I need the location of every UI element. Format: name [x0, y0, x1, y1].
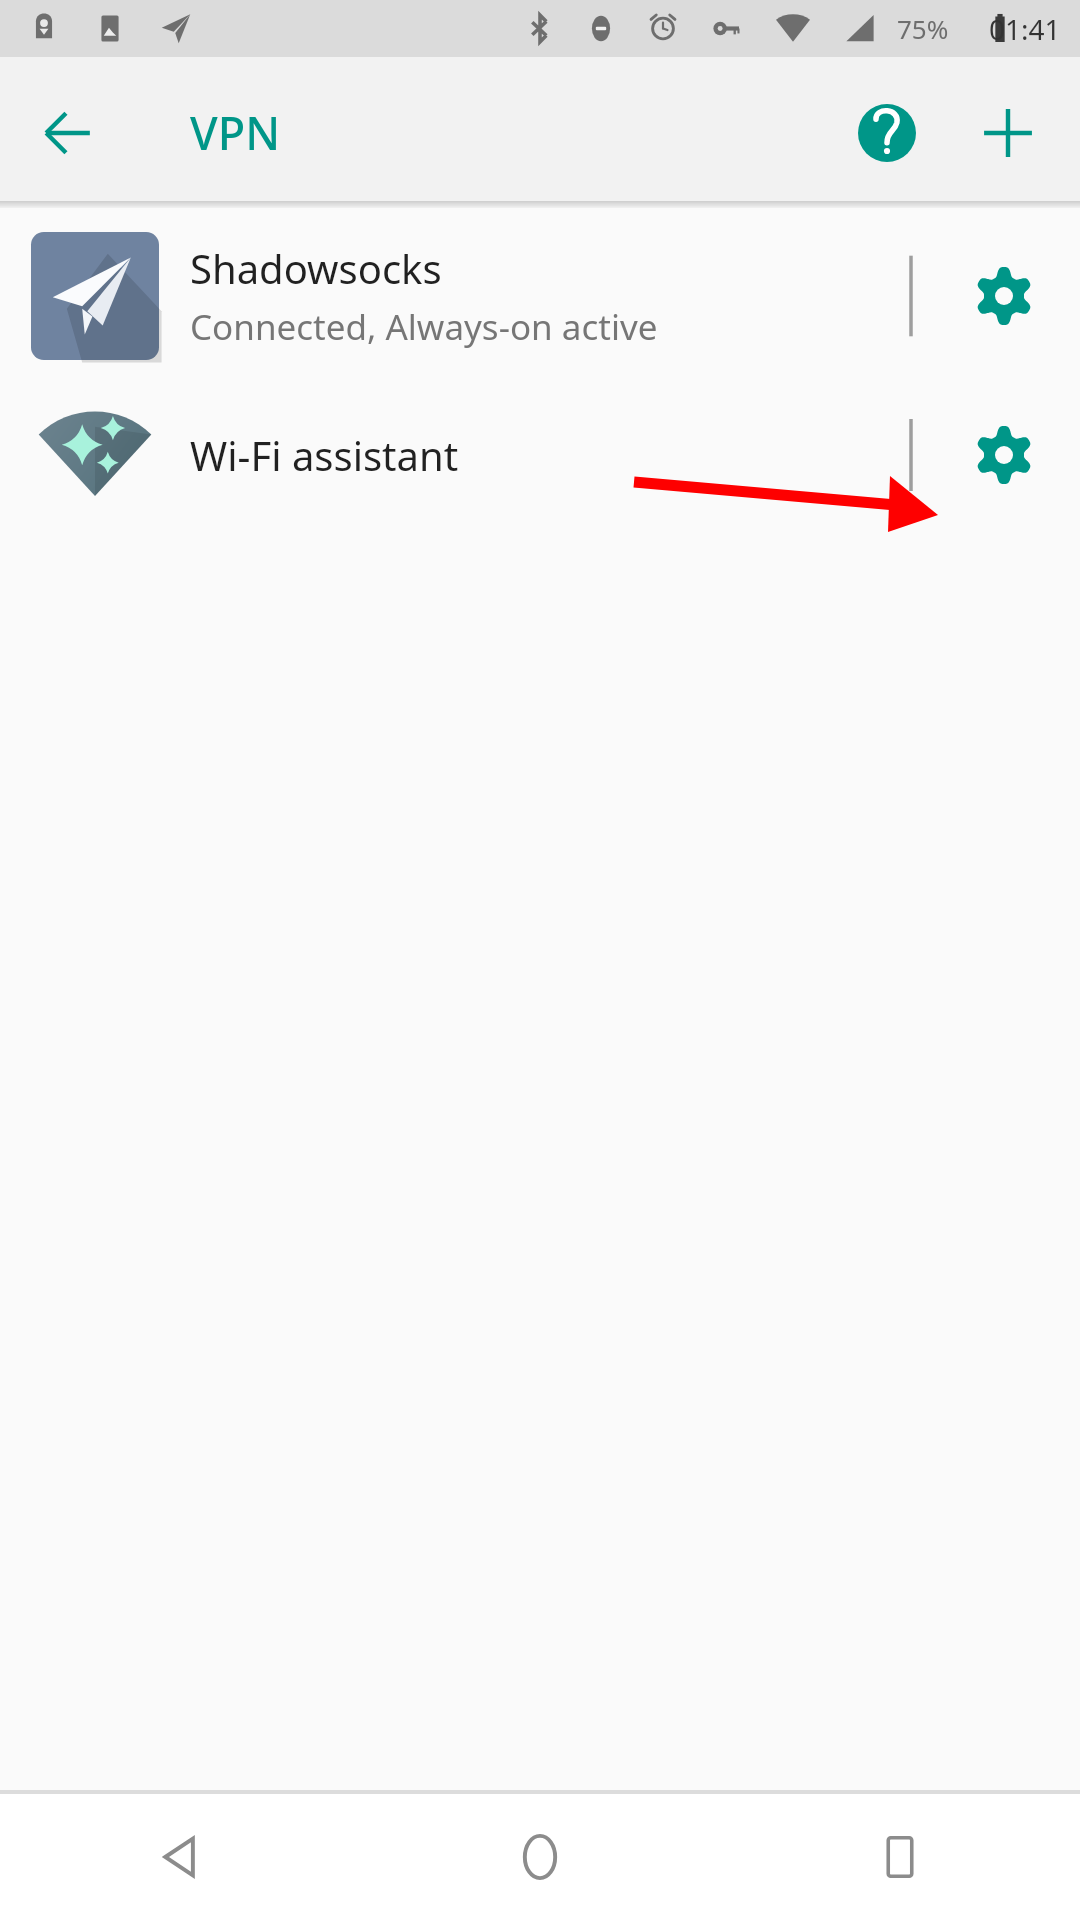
button[interactable]: Home — [360, 1794, 720, 1920]
button[interactable]: Wi-Fi assistant — [0, 380, 1080, 530]
staticText: Connected, Always-on active — [190, 303, 658, 351]
staticText: Wi-Fi assistant — [190, 428, 459, 482]
staticText: Shadowsocks — [190, 241, 442, 295]
button[interactable]: Settings for Wi-Fi assistant — [927, 380, 1080, 530]
button[interactable]: Add VPN profile — [958, 83, 1058, 183]
button[interactable]: Settings for Shadowsocks — [927, 212, 1080, 380]
button[interactable]: Back — [0, 1794, 360, 1920]
button[interactable]: Recent apps — [720, 1794, 1080, 1920]
staticText: 75% — [897, 11, 949, 46]
button[interactable]: Back — [20, 85, 116, 181]
button[interactable]: Help — [832, 78, 942, 188]
staticText: VPN — [190, 102, 281, 163]
button[interactable]: Shadowsocks — [0, 212, 1080, 380]
staticText: 01:41 — [989, 10, 1061, 48]
